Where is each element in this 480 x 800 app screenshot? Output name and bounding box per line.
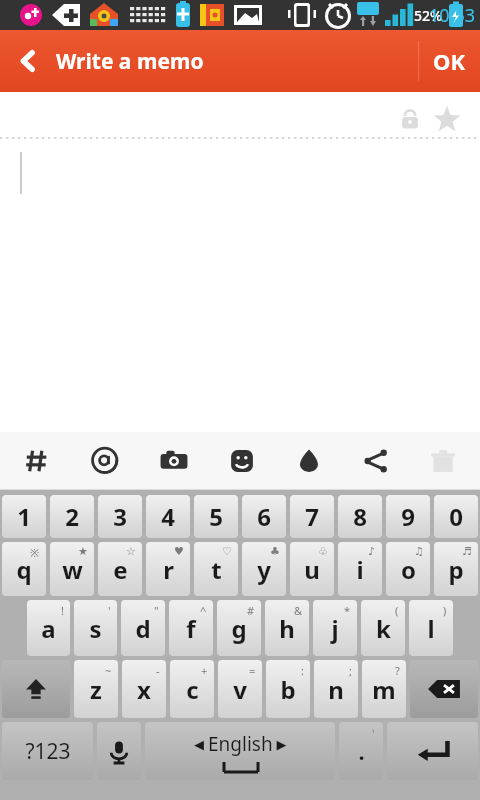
button[interactable]: g	[217, 600, 261, 656]
button[interactable]: c	[170, 660, 214, 718]
other: Voice input	[104, 736, 134, 766]
staticText: =	[249, 663, 256, 678]
staticText: b	[280, 673, 296, 706]
button[interactable]: Voice input	[97, 722, 141, 780]
button[interactable]: Share	[342, 432, 409, 490]
button[interactable]: y	[242, 542, 286, 596]
staticText: w	[62, 553, 83, 586]
staticText: ~	[105, 663, 112, 678]
button[interactable]: 0	[434, 495, 478, 538]
button[interactable]: e	[98, 542, 142, 596]
staticText: m	[372, 673, 396, 706]
staticText: 8	[353, 500, 367, 533]
staticText: &	[294, 603, 303, 618]
button[interactable]: f	[169, 600, 213, 656]
button[interactable]: d	[121, 600, 165, 656]
button[interactable]: m	[362, 660, 406, 718]
button[interactable]: 1	[2, 495, 46, 538]
button[interactable]: q	[2, 542, 46, 596]
staticText: t	[211, 553, 222, 586]
button[interactable]: Back	[0, 30, 480, 92]
staticText: p	[448, 553, 464, 586]
staticText: ♥	[174, 545, 184, 558]
staticText: :	[301, 663, 304, 678]
staticText: ♪	[368, 545, 376, 558]
button[interactable]: 5	[194, 495, 238, 538]
button[interactable]: u	[290, 542, 334, 596]
button[interactable]: t	[194, 542, 238, 596]
staticText: 52%	[414, 6, 442, 25]
staticText: ◀	[194, 735, 208, 753]
button[interactable]: z	[74, 660, 118, 718]
staticText: 4	[161, 500, 175, 533]
staticText: 3	[113, 500, 127, 533]
button[interactable]: 4	[146, 495, 190, 538]
staticText: h	[279, 612, 295, 645]
staticText: ?123	[25, 737, 71, 766]
button[interactable]: b	[266, 660, 310, 718]
staticText: 9	[401, 500, 415, 533]
staticText: OK	[433, 46, 466, 76]
button[interactable]: h	[265, 600, 309, 656]
staticText: 5	[209, 500, 223, 533]
staticText: !	[61, 603, 64, 618]
staticText: n	[328, 673, 344, 706]
staticText: ♡	[222, 545, 232, 558]
button[interactable]: 2	[50, 495, 94, 538]
button[interactable]: l	[409, 600, 453, 656]
button[interactable]: v	[218, 660, 262, 718]
button[interactable]: k	[361, 600, 405, 656]
button[interactable]: Delete	[409, 432, 476, 490]
button[interactable]: n	[314, 660, 358, 718]
staticText: .	[358, 736, 365, 766]
button[interactable]: j	[313, 600, 357, 656]
button[interactable]: x	[122, 660, 166, 718]
button[interactable]: w	[50, 542, 94, 596]
staticText: )	[443, 603, 447, 618]
staticText: ♣	[270, 545, 280, 558]
staticText: ♬	[462, 545, 472, 558]
staticText: a	[41, 612, 56, 645]
button[interactable]: Enter	[387, 722, 478, 780]
button[interactable]: 3	[98, 495, 142, 538]
button[interactable]: Hashtag	[4, 432, 72, 490]
staticText: j	[331, 612, 339, 645]
button[interactable]: Back	[0, 30, 56, 92]
staticText: '	[372, 726, 375, 741]
staticText: ▶	[273, 735, 287, 753]
other: Shift	[23, 676, 49, 702]
staticText: 10:53	[429, 3, 476, 28]
button[interactable]: 7	[290, 495, 334, 538]
button[interactable]: Shift	[2, 660, 70, 718]
button[interactable]: i	[338, 542, 382, 596]
staticText: '	[108, 603, 111, 618]
button[interactable]: ◀	[145, 722, 335, 780]
button[interactable]: ?123	[2, 722, 93, 780]
staticText: k	[376, 612, 391, 645]
staticText: ;	[349, 663, 352, 678]
button[interactable]: r	[146, 542, 190, 596]
button[interactable]: Favorite	[428, 100, 466, 138]
button[interactable]: OK	[419, 30, 480, 92]
staticText: 7	[305, 500, 319, 533]
staticText: 2	[65, 500, 79, 533]
staticText: r	[163, 553, 174, 586]
staticText: 1	[17, 500, 31, 533]
button[interactable]: 6	[242, 495, 286, 538]
staticText: ♫	[414, 545, 424, 558]
button[interactable]: .	[339, 722, 383, 780]
button[interactable]: Lock	[392, 101, 428, 137]
button[interactable]: p	[434, 542, 478, 596]
button[interactable]: o	[386, 542, 430, 596]
button[interactable]: 9	[386, 495, 430, 538]
button[interactable]: Emoji	[208, 432, 275, 490]
button[interactable]: a	[27, 600, 70, 656]
button[interactable]: Backspace	[410, 660, 478, 718]
staticText: English	[208, 731, 273, 757]
button[interactable]: Ink	[275, 432, 342, 490]
button[interactable]: s	[74, 600, 117, 656]
button[interactable]: 8	[338, 495, 382, 538]
button[interactable]: Camera	[140, 432, 208, 490]
button[interactable]: Mention	[72, 432, 140, 490]
staticText: ★	[78, 545, 88, 558]
